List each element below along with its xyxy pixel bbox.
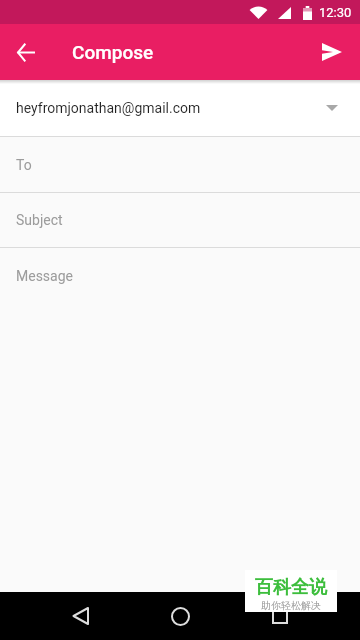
button[interactable]: Subject: [0, 193, 360, 247]
staticText: 12:30: [319, 5, 352, 20]
button[interactable]: To: [0, 137, 360, 192]
staticText: Subject: [16, 212, 63, 228]
staticText: heyfromjonathan@gmail.com: [16, 100, 201, 116]
staticText: Message: [16, 268, 73, 284]
button[interactable]: [30, 592, 130, 640]
button[interactable]: [312, 32, 352, 72]
staticText: 助你轻松解决: [261, 599, 321, 612]
staticText: To: [16, 157, 32, 173]
staticText: 百科全说: [255, 576, 327, 599]
button[interactable]: Message: [0, 248, 360, 592]
staticText: Compose: [72, 41, 154, 63]
button[interactable]: heyfromjonathan@gmail.com: [0, 80, 360, 136]
button[interactable]: [230, 592, 330, 640]
button[interactable]: [7, 34, 43, 70]
button[interactable]: [130, 592, 230, 640]
